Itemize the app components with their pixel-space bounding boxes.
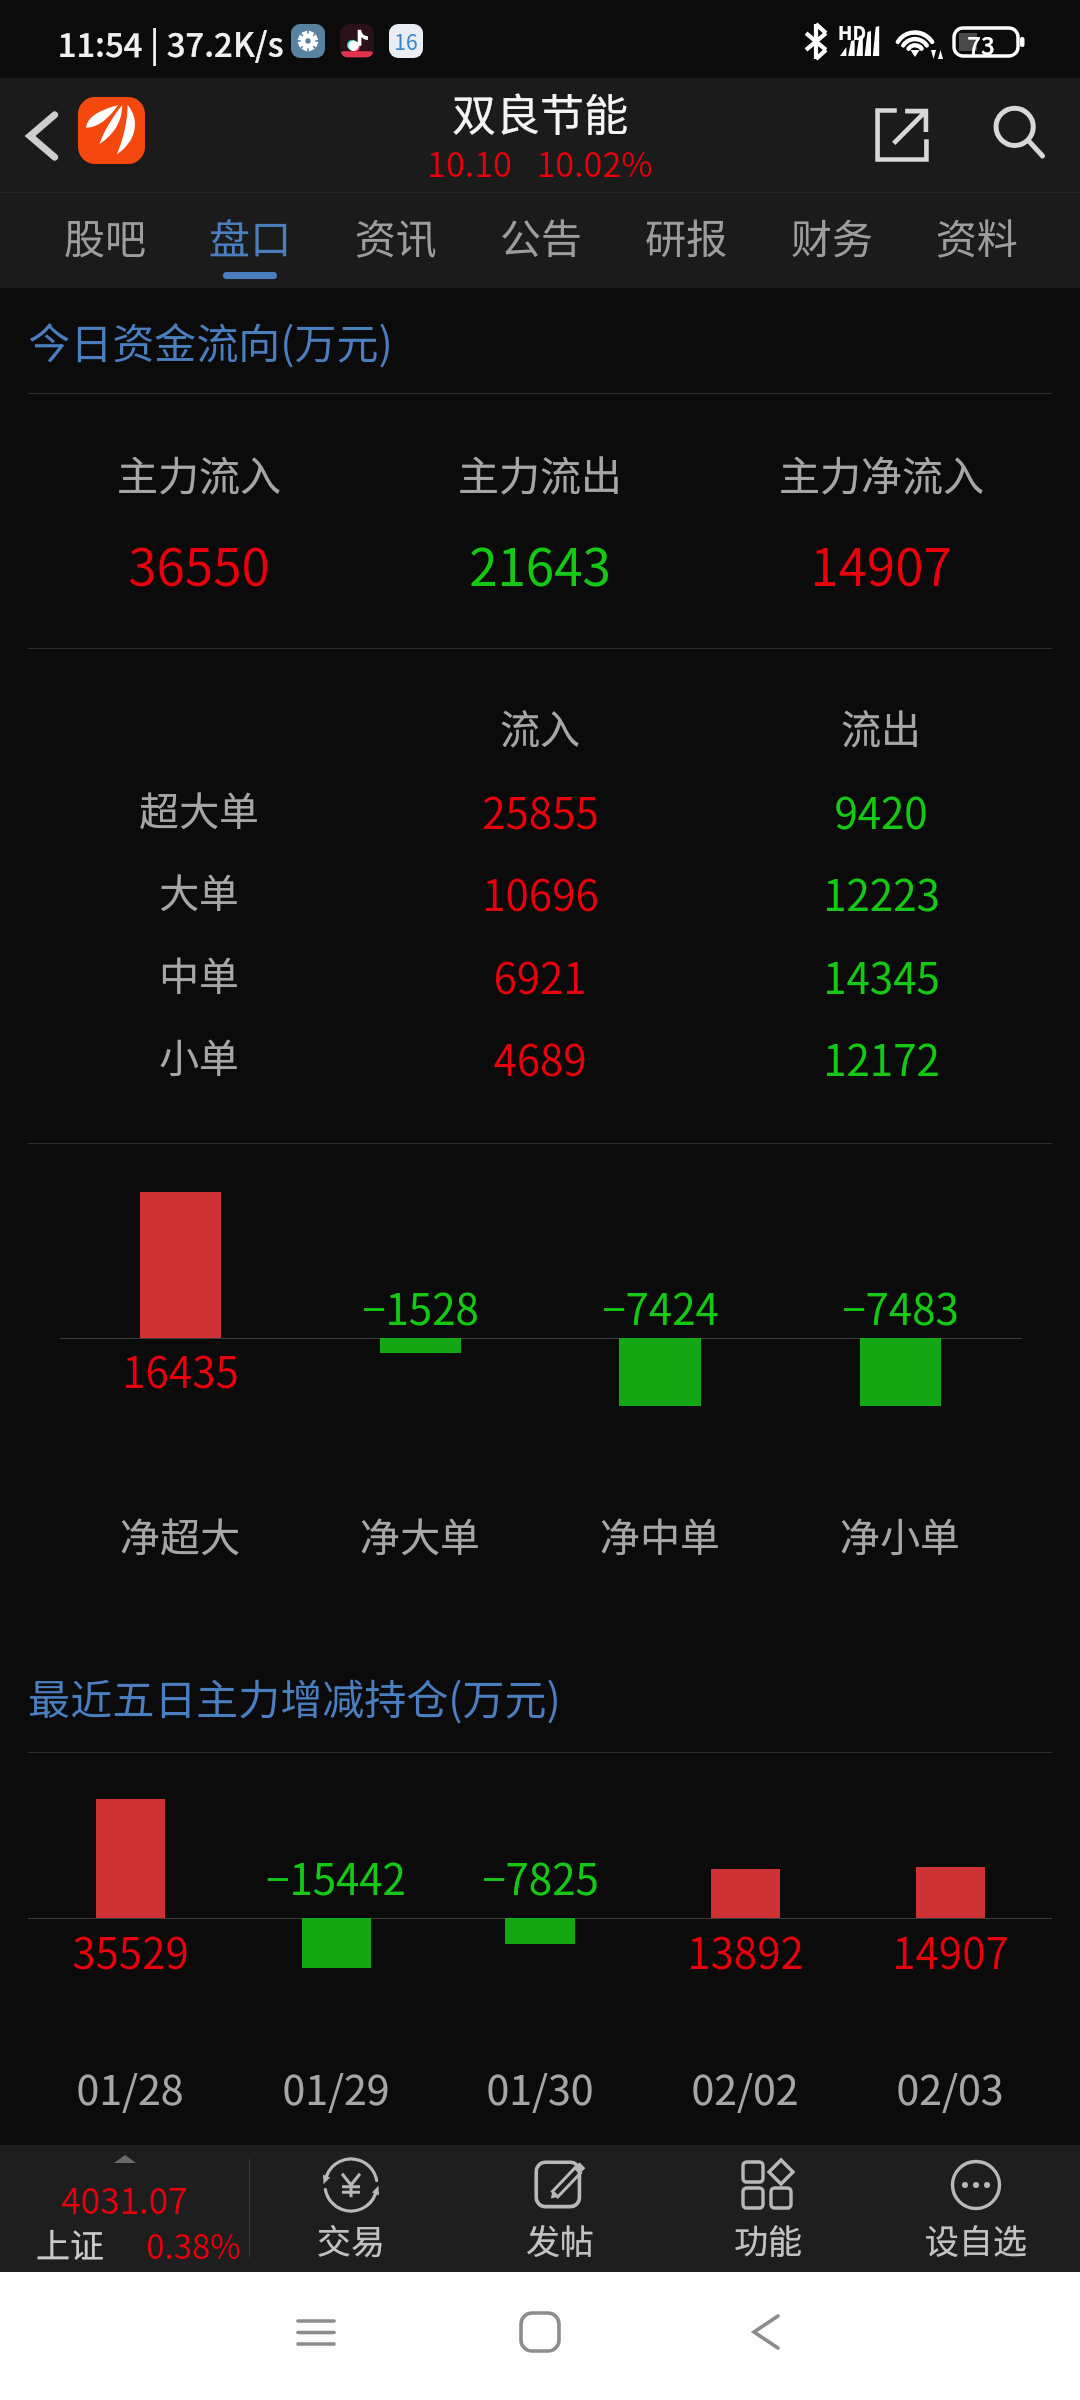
staticText: 14345 bbox=[823, 945, 940, 1006]
staticText: 发帖 bbox=[526, 2215, 594, 2264]
staticText: 公告 bbox=[500, 206, 582, 265]
button[interactable]: 财务 bbox=[759, 193, 904, 288]
staticText: 中单 bbox=[159, 945, 239, 1003]
staticText: −7825 bbox=[482, 1846, 599, 1907]
button[interactable]: 盘口 bbox=[177, 193, 322, 288]
button[interactable]: 交易 bbox=[247, 2145, 455, 2272]
staticText: 今日资金流向(万元) bbox=[28, 310, 393, 371]
staticText: 流出 bbox=[841, 698, 921, 756]
staticText: 双良节能 bbox=[452, 80, 628, 144]
staticText: 6921 bbox=[493, 945, 587, 1006]
button[interactable]: Home bbox=[500, 2292, 580, 2372]
staticText: 13892 bbox=[687, 1920, 804, 1981]
staticText: 超大单 bbox=[139, 780, 259, 838]
staticText: 0.38% bbox=[146, 2221, 241, 2269]
staticText: 财务 bbox=[791, 206, 873, 265]
staticText: 资料 bbox=[936, 206, 1018, 265]
staticText: 主力流出 bbox=[458, 443, 622, 502]
staticText: 交易 bbox=[317, 2215, 385, 2264]
button[interactable]: Back bbox=[726, 2292, 806, 2372]
staticText: 73 bbox=[967, 27, 995, 62]
button[interactable]: 资料 bbox=[904, 193, 1049, 288]
button[interactable]: 设自选 bbox=[872, 2145, 1080, 2272]
staticText: 36550 bbox=[128, 527, 270, 601]
staticText: 大单 bbox=[159, 862, 239, 920]
staticText: 02/02 bbox=[691, 2057, 799, 2116]
button[interactable]: Eastmoney bbox=[78, 97, 145, 164]
staticText: −7483 bbox=[842, 1276, 959, 1337]
staticText: 最近五日主力增减持仓(万元) bbox=[28, 1666, 561, 1727]
button[interactable]: Back bbox=[7, 101, 77, 171]
staticText: 主力净流入 bbox=[779, 443, 984, 502]
staticText: 净小单 bbox=[840, 1506, 960, 1564]
staticText: 流入 bbox=[500, 698, 580, 756]
staticText: −1528 bbox=[362, 1276, 479, 1337]
staticText: 12172 bbox=[823, 1027, 940, 1088]
staticText: 01/30 bbox=[486, 2057, 594, 2116]
staticText: −15442 bbox=[266, 1846, 406, 1907]
staticText: 01/29 bbox=[282, 2057, 390, 2116]
staticText: 功能 bbox=[734, 2215, 802, 2264]
button[interactable]: 股吧 bbox=[32, 193, 177, 288]
staticText: 研报 bbox=[645, 206, 727, 265]
button[interactable]: 功能 bbox=[664, 2145, 872, 2272]
staticText: 上证 bbox=[36, 2219, 104, 2268]
button[interactable]: 发帖 bbox=[456, 2145, 664, 2272]
staticText: 02/03 bbox=[896, 2057, 1004, 2116]
staticText: 4689 bbox=[493, 1027, 587, 1088]
button[interactable]: 资讯 bbox=[323, 193, 468, 288]
staticText: 盘口 bbox=[209, 206, 291, 265]
staticText: −7424 bbox=[602, 1276, 719, 1337]
staticText: 10.10 bbox=[427, 138, 512, 187]
staticText: 净中单 bbox=[600, 1506, 720, 1564]
staticText: 10696 bbox=[482, 862, 599, 923]
staticText: 净大单 bbox=[360, 1506, 480, 1564]
staticText: 设自选 bbox=[925, 2215, 1027, 2264]
staticText: 21643 bbox=[469, 527, 611, 601]
staticText: 10.02% bbox=[536, 138, 653, 187]
staticText: 35529 bbox=[72, 1920, 189, 1981]
staticText: 股吧 bbox=[64, 206, 146, 265]
staticText: 16435 bbox=[122, 1339, 239, 1400]
button[interactable]: Search bbox=[978, 92, 1060, 174]
staticText: 资讯 bbox=[355, 206, 437, 265]
button[interactable]: 4031.07 bbox=[0, 2145, 249, 2272]
button[interactable]: Recent apps bbox=[276, 2292, 356, 2372]
staticText: 25855 bbox=[482, 780, 599, 841]
staticText: HD bbox=[838, 18, 866, 46]
staticText: 4031.07 bbox=[61, 2173, 188, 2224]
staticText: 12223 bbox=[823, 862, 940, 923]
staticText: 小单 bbox=[159, 1027, 239, 1085]
button[interactable]: 公告 bbox=[468, 193, 613, 288]
staticText: 14907 bbox=[892, 1920, 1009, 1981]
staticText: 11:54 | 37.2K/s bbox=[57, 19, 284, 67]
staticText: 16 bbox=[394, 26, 418, 56]
staticText: 14907 bbox=[810, 527, 952, 601]
button[interactable]: 研报 bbox=[613, 193, 758, 288]
staticText: 主力流入 bbox=[117, 443, 281, 502]
staticText: 净超大 bbox=[120, 1506, 240, 1564]
staticText: 01/28 bbox=[76, 2057, 184, 2116]
button[interactable]: Share bbox=[861, 94, 943, 176]
staticText: 9420 bbox=[834, 780, 928, 841]
